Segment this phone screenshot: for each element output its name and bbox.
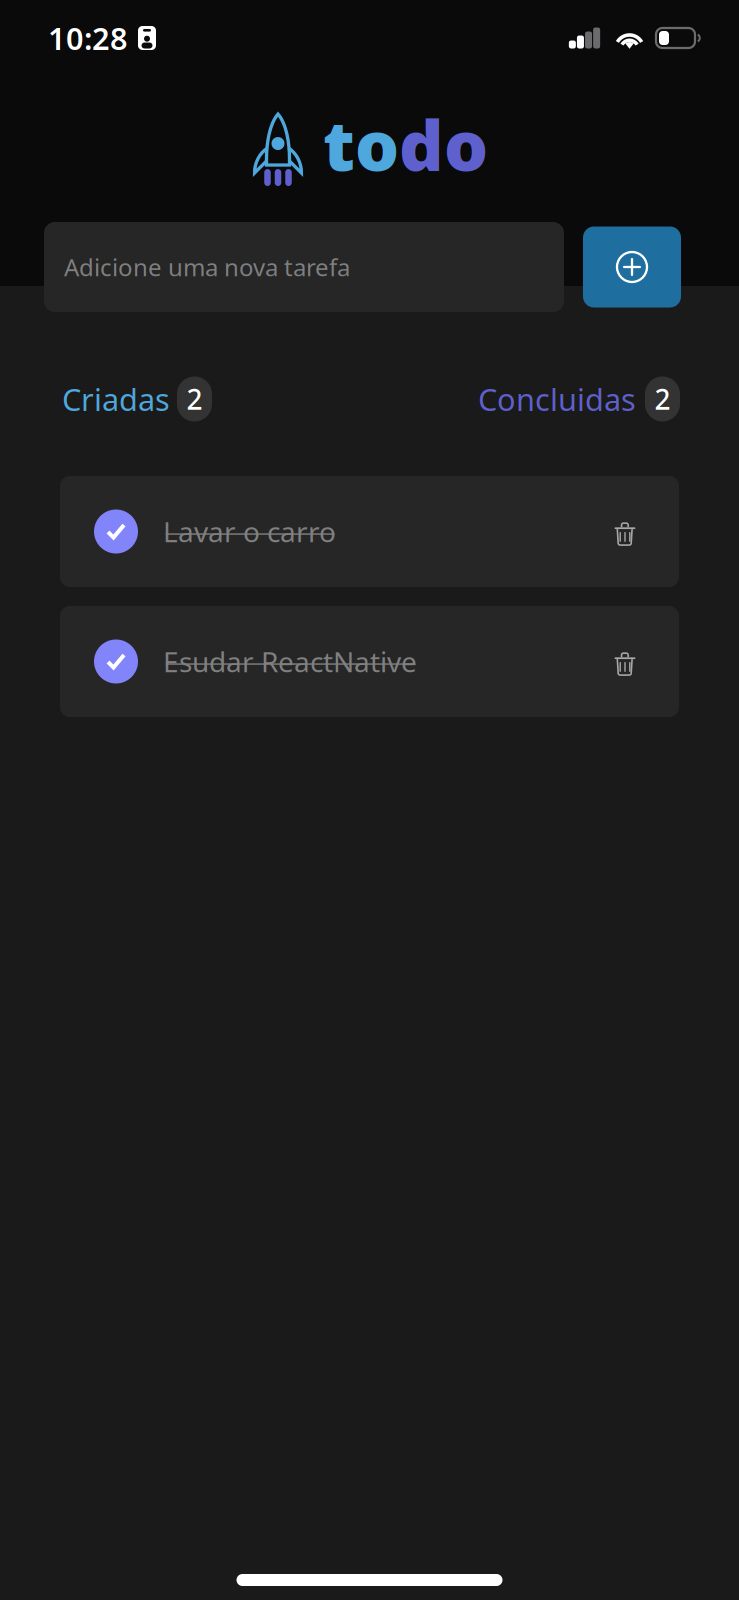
staticText: Esudar ReactNative: [163, 643, 417, 680]
staticText: do: [399, 98, 488, 190]
button[interactable]: Remover tarefa: [599, 503, 651, 559]
button[interactable]: Remover tarefa: [599, 633, 651, 689]
staticText: 2: [654, 380, 670, 418]
button[interactable]: Adicionar tarefa: [583, 226, 681, 307]
staticText: Adicione uma nova tarefa: [64, 251, 350, 283]
staticText: Lavar o carro: [163, 513, 336, 550]
staticText: 2: [186, 380, 202, 418]
staticText: to: [323, 98, 399, 190]
staticText: Criadas: [62, 379, 170, 419]
button[interactable]: Adicione uma nova tarefa: [44, 222, 564, 312]
staticText: 10:28: [48, 18, 128, 58]
button[interactable]: Marcar tarefa como pendente: [88, 633, 144, 689]
button[interactable]: Marcar tarefa como pendente: [88, 503, 144, 559]
staticText: Concluidas: [478, 379, 636, 419]
